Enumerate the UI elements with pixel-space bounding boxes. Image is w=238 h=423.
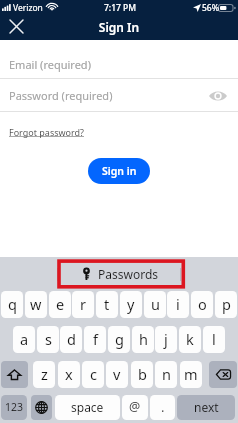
button[interactable]: v (106, 361, 128, 388)
staticText: v (113, 364, 121, 384)
button[interactable]: Password (required) (0, 79, 238, 111)
button[interactable]: @ (122, 395, 148, 420)
staticText: a (20, 329, 29, 349)
staticText: 123 (5, 400, 24, 414)
staticText: Email (required) (9, 57, 91, 72)
button[interactable]: s (37, 326, 59, 353)
staticText: p (222, 294, 231, 314)
staticText: e (56, 294, 65, 314)
button[interactable]: Passwords (83, 265, 159, 283)
button[interactable]: Close (6, 16, 27, 37)
button[interactable]: Backspace (209, 361, 237, 388)
staticText: l (212, 329, 216, 349)
button[interactable]: n (155, 361, 177, 388)
button[interactable]: g (108, 326, 130, 353)
staticText: 56% (202, 2, 219, 14)
button[interactable]: next (177, 395, 235, 420)
staticText: 7:17 PM (104, 2, 137, 14)
button[interactable]: p (215, 291, 237, 318)
staticText: next (194, 399, 219, 415)
staticText: Passwords (98, 266, 159, 282)
staticText: . (161, 398, 165, 416)
staticText: Password (required) (9, 88, 113, 103)
staticText: t (104, 294, 110, 314)
button[interactable]: c (82, 361, 104, 388)
staticText: s (45, 329, 52, 349)
button[interactable]: a (13, 326, 35, 353)
staticText: y (127, 294, 135, 314)
button[interactable]: u (144, 291, 166, 318)
button[interactable]: x (58, 361, 80, 388)
button[interactable]: q (1, 291, 23, 318)
staticText: i (176, 294, 180, 314)
staticText: x (65, 364, 73, 384)
button[interactable]: space (55, 395, 120, 420)
staticText: Forgot password? (9, 126, 85, 138)
staticText: b (138, 364, 147, 384)
button[interactable]: w (25, 291, 47, 318)
button[interactable]: z (33, 361, 55, 388)
button[interactable]: r (72, 291, 94, 318)
button[interactable]: Sign in (88, 158, 150, 184)
staticText: r (80, 294, 86, 314)
button[interactable]: 123 (1, 395, 27, 420)
staticText: k (186, 329, 194, 349)
staticText: m (184, 364, 198, 384)
button[interactable]: b (131, 361, 153, 388)
button[interactable]: e (49, 291, 71, 318)
button[interactable]: Next keyboard (31, 395, 52, 420)
button[interactable]: f (84, 326, 106, 353)
button[interactable]: i (167, 291, 189, 318)
button[interactable]: m (180, 361, 202, 388)
button[interactable]: d (60, 326, 82, 353)
staticText: @ (129, 398, 141, 415)
staticText: w (30, 294, 42, 314)
staticText: Verizon (13, 2, 43, 14)
staticText: h (139, 329, 148, 349)
button[interactable]: . (150, 395, 175, 420)
staticText: space (71, 399, 104, 415)
staticText: Sign in (102, 164, 137, 178)
button[interactable]: o (191, 291, 213, 318)
staticText: g (115, 329, 124, 349)
button[interactable]: l (203, 326, 225, 353)
staticText: f (93, 329, 98, 349)
staticText: Sign In (0, 19, 238, 35)
button[interactable]: Shift (1, 361, 28, 388)
button[interactable]: Email (required) (0, 41, 238, 78)
button[interactable]: j (155, 326, 177, 353)
staticText: u (151, 294, 160, 314)
button[interactable]: y (120, 291, 142, 318)
button[interactable]: h (132, 326, 154, 353)
staticText: o (198, 294, 207, 314)
staticText: q (8, 294, 17, 314)
staticText: j (164, 329, 168, 349)
button[interactable]: k (179, 326, 201, 353)
button[interactable]: t (96, 291, 118, 318)
staticText: z (41, 364, 48, 384)
staticText: c (90, 364, 97, 384)
button[interactable]: Show password (205, 87, 231, 105)
staticText: n (162, 364, 171, 384)
staticText: d (67, 329, 76, 349)
button[interactable]: Forgot password? (8, 126, 86, 138)
